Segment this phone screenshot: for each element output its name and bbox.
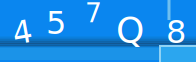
staticText: Q [116,9,144,51]
staticText: 4 [12,15,32,50]
staticText: 7 [85,0,102,28]
staticText: 5 [46,4,66,42]
staticText: 8 [166,13,186,51]
